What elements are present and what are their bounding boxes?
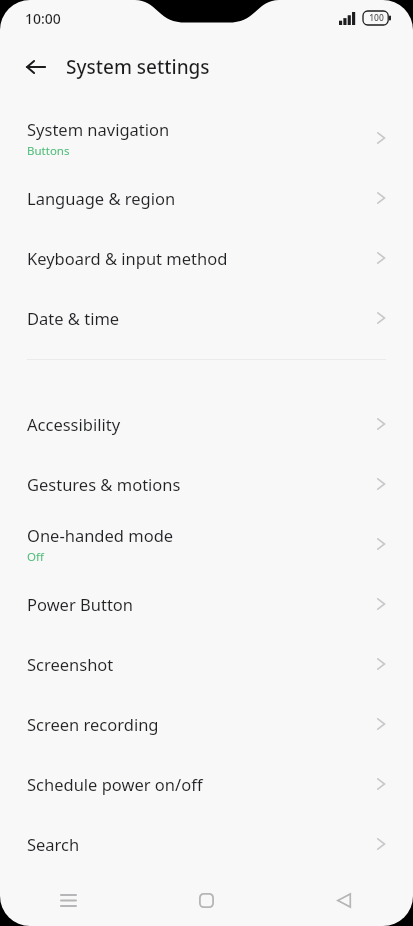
button[interactable]: Recent apps — [0, 874, 137, 926]
staticText: Keyboard & input method — [27, 247, 228, 269]
button[interactable]: System navigation — [0, 108, 413, 168]
staticText: System settings — [66, 54, 210, 80]
staticText: Screen recording — [27, 713, 159, 735]
staticText: Language & region — [27, 187, 176, 209]
button[interactable]: Screen recording — [0, 694, 413, 754]
staticText: Buttons — [27, 143, 70, 159]
button[interactable]: Back — [275, 874, 413, 926]
staticText: Off — [27, 549, 44, 565]
button[interactable]: Screenshot — [0, 634, 413, 694]
staticText: Gestures & motions — [27, 473, 181, 495]
staticText: One-handed mode — [27, 524, 174, 546]
staticText: Power Button — [27, 593, 134, 615]
staticText: 10:00 — [25, 9, 61, 28]
button[interactable]: Language & region — [0, 168, 413, 228]
button[interactable]: Schedule power on/off — [0, 754, 413, 814]
button[interactable]: Gestures & motions — [0, 454, 413, 514]
button[interactable]: Date & time — [0, 288, 413, 348]
staticText: Schedule power on/off — [27, 773, 203, 795]
button[interactable]: One-handed mode — [0, 514, 413, 574]
button[interactable]: Home — [137, 874, 275, 926]
staticText: 100 — [369, 12, 384, 24]
staticText: Date & time — [27, 307, 120, 329]
button[interactable]: Power Button — [0, 574, 413, 634]
staticText: Search — [27, 833, 80, 855]
button[interactable]: Accessibility — [0, 394, 413, 454]
staticText: System navigation — [27, 118, 170, 140]
button[interactable]: Back — [14, 45, 58, 89]
staticText: Accessibility — [27, 413, 121, 435]
button[interactable]: Search — [0, 814, 413, 874]
button[interactable]: Keyboard & input method — [0, 228, 413, 288]
staticText: Screenshot — [27, 653, 114, 675]
